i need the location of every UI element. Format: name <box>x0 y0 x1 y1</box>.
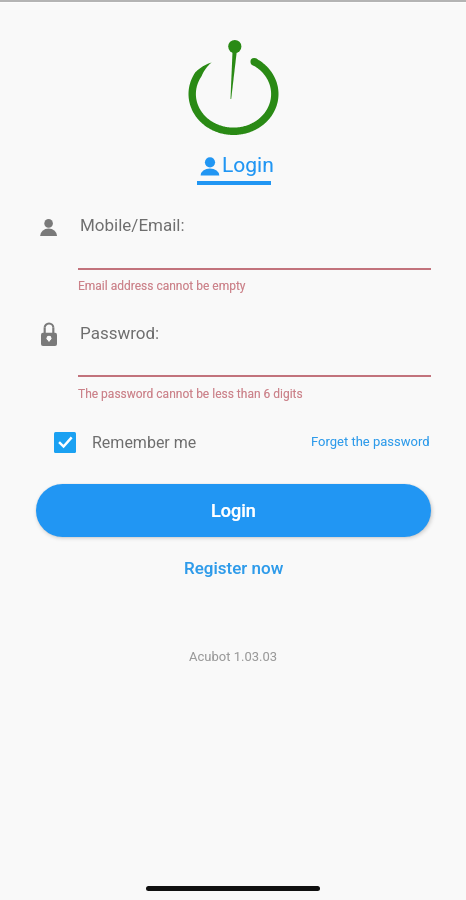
staticText: Login <box>222 153 274 178</box>
button[interactable]: Register now <box>177 555 291 581</box>
other: Account <box>40 219 58 237</box>
button[interactable]: Login <box>36 484 431 537</box>
staticText: Login <box>211 500 256 521</box>
staticText: Register now <box>184 558 284 578</box>
button[interactable]: Password <box>36 320 431 382</box>
other: Password <box>41 324 57 346</box>
staticText: Acubot 1.03.03 <box>189 649 278 664</box>
staticText: Passwrod: <box>80 323 160 343</box>
button[interactable]: Remember me <box>54 429 197 455</box>
staticText: Remember me <box>92 433 197 452</box>
staticText: Mobile/Email: <box>80 215 185 235</box>
staticText: Email address cannot be empty <box>78 279 246 293</box>
staticText: The password cannot be less than 6 digit… <box>78 387 303 401</box>
button[interactable]: Login <box>193 152 274 185</box>
button[interactable]: Forget the password <box>305 429 436 453</box>
button[interactable]: Account <box>36 212 431 274</box>
staticText: Forget the password <box>311 434 430 449</box>
